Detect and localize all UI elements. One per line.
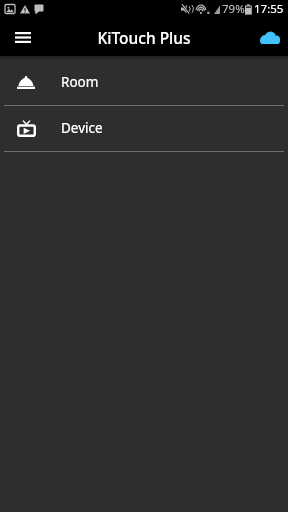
button[interactable]: Room [0, 60, 288, 105]
button[interactable]: Open navigation menu [0, 18, 46, 56]
button[interactable]: Device [0, 106, 288, 151]
staticText: Room [61, 73, 99, 91]
button[interactable]: Cloud sync [248, 18, 288, 56]
staticText: KiTouch Plus [97, 27, 191, 48]
staticText: Device [61, 119, 103, 137]
staticText: 79% [222, 1, 245, 17]
staticText: 17:55 [254, 1, 284, 17]
